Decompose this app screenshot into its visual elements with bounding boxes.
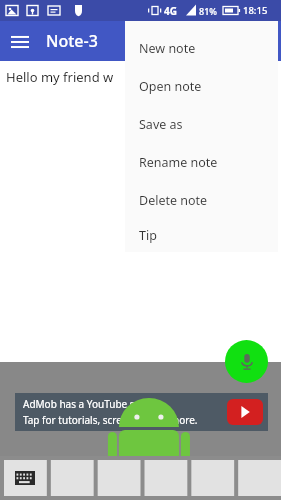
button[interactable]: Open note <box>125 67 278 105</box>
button[interactable]: Save as <box>125 105 278 143</box>
button[interactable]: Rename note <box>125 143 278 181</box>
staticText: New note <box>139 40 196 57</box>
button[interactable]: Delete note <box>125 181 278 219</box>
staticText: 18:15 <box>243 4 268 17</box>
staticText: 81% <box>199 5 217 17</box>
staticText: Tap for tutorials, screencasts & more. <box>23 413 198 427</box>
staticText: Hello my friend w <box>6 68 114 86</box>
staticText: Note-3 <box>46 30 98 52</box>
button[interactable]: Open navigation menu <box>0 21 40 61</box>
button[interactable]: Play YouTube video <box>227 399 263 425</box>
staticText: 4G <box>164 4 177 18</box>
staticText: Open note <box>139 78 202 95</box>
button[interactable]: Voice input <box>225 340 268 383</box>
button[interactable]: Show keyboard <box>4 460 46 496</box>
button[interactable]: Tip <box>125 219 278 252</box>
staticText: AdMob has a YouTube series! <box>23 397 161 411</box>
staticText: Delete note <box>139 192 208 209</box>
staticText: Tip <box>139 227 157 244</box>
button[interactable]: New note <box>125 29 278 67</box>
staticText: Save as <box>139 116 183 133</box>
staticText: Rename note <box>139 154 218 171</box>
button[interactable]: AdMob has a YouTube series! <box>15 393 268 431</box>
